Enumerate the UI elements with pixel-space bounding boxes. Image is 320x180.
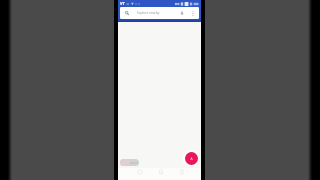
button[interactable]: Explore nearby <box>120 7 199 19</box>
button[interactable]: Your location <box>120 159 139 166</box>
staticText: VT <box>120 1 125 6</box>
staticText: Explore nearby <box>137 11 160 15</box>
button[interactable]: Start navigation <box>185 152 198 165</box>
